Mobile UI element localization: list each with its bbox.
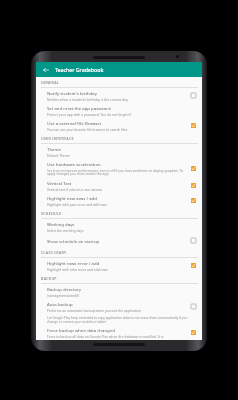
button[interactable]: Navigate up — [41, 65, 51, 75]
button[interactable]: Vertical Text — [36, 178, 202, 193]
staticText: Default Theme — [47, 153, 70, 157]
button[interactable]: Set and reset the app password — [36, 103, 202, 118]
staticText: USER INTERFACE — [41, 136, 74, 141]
staticText: Show schedule on startup — [47, 238, 100, 244]
button[interactable]: Use hardware acceleration — [36, 159, 202, 178]
button[interactable]: Show schedule on startup — [36, 234, 202, 247]
staticText: Use a external File Browser — [47, 120, 102, 126]
staticText: You can use your favorite file browser t… — [47, 127, 128, 131]
staticText: Protect your app with a password. You do… — [47, 112, 132, 116]
staticText: Auto-backup — [47, 301, 73, 307]
staticText: SCHEDULE — [41, 211, 62, 216]
staticText: Backup directory — [47, 286, 82, 292]
button[interactable]: Working days — [36, 219, 202, 234]
button[interactable]: Theme — [36, 144, 202, 159]
staticText: Select the working days — [47, 228, 84, 232]
staticText: BACKUP — [41, 276, 57, 281]
button[interactable]: Highlight rows error / add — [36, 258, 202, 273]
button[interactable]: Use a external File Browser — [36, 118, 202, 133]
staticText: Vertical text if column is too narrow — [47, 187, 102, 191]
staticText: /storage/emulated/0 — [47, 293, 80, 297]
staticText: Teacher Gradebook — [55, 66, 104, 73]
staticText: Set and reset the app password — [47, 105, 111, 111]
button[interactable]: Notify student's birthday — [36, 88, 202, 103]
staticText: Notify student's birthday — [47, 90, 97, 96]
button[interactable]: Highlight new avas / add — [36, 193, 202, 208]
staticText: Highlight with color error and add rows — [47, 267, 108, 271]
staticText: Theme — [47, 146, 61, 152]
staticText: Let Google Play keep extended to copy ap… — [47, 316, 196, 324]
staticText: Performs an automatic backup when you ex… — [47, 308, 142, 312]
staticText: Notifies when a student's birthday is th… — [47, 97, 128, 101]
staticText: Force to backup all data on Google Play … — [47, 334, 186, 338]
button[interactable]: Force backup when data changed — [36, 325, 202, 340]
staticText: Highlight rows error / add — [47, 260, 100, 266]
staticText: GENERAL — [41, 80, 60, 85]
staticText: Force backup when data changed — [47, 327, 115, 333]
staticText: Use hardware acceleration — [47, 161, 101, 167]
button[interactable]: Backup directory — [36, 284, 202, 299]
staticText: Highlight new avas / add — [47, 195, 97, 201]
staticText: Vertical Text — [47, 180, 72, 186]
staticText: CLASS DIARY — [41, 250, 67, 255]
staticText: Working days — [47, 221, 75, 227]
staticText: Set it on to improve performance, turn i… — [47, 168, 186, 176]
button[interactable]: Auto-backup — [36, 299, 202, 314]
staticText: Highlight with past error and add rows — [47, 202, 107, 206]
